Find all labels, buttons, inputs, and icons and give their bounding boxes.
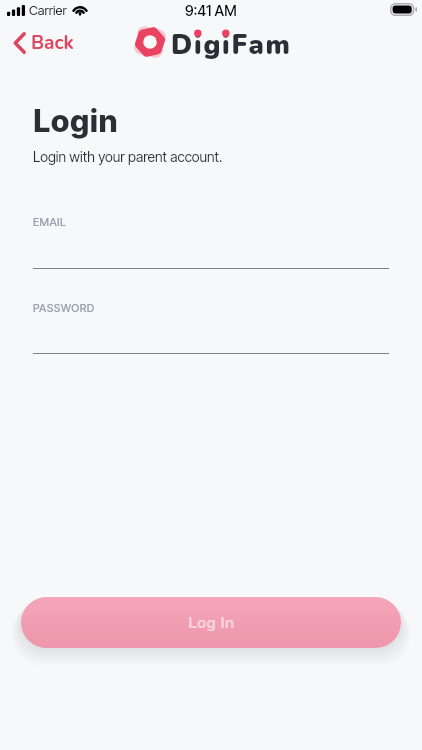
staticText: DigiFam: [171, 27, 292, 64]
staticText: Login with your parent account.: [33, 148, 223, 165]
staticText: EMAIL: [33, 215, 67, 228]
staticText: PASSWORD: [33, 301, 95, 314]
button[interactable]: Log In: [21, 597, 401, 648]
staticText: Login: [33, 102, 119, 140]
staticText: Log In: [188, 612, 235, 634]
staticText: Carrier: [29, 2, 67, 18]
staticText: Back: [31, 30, 74, 56]
button[interactable]: Back: [7, 23, 82, 63]
other: DigiFam logo: [133, 26, 167, 58]
staticText: 9:41 AM: [185, 2, 237, 20]
